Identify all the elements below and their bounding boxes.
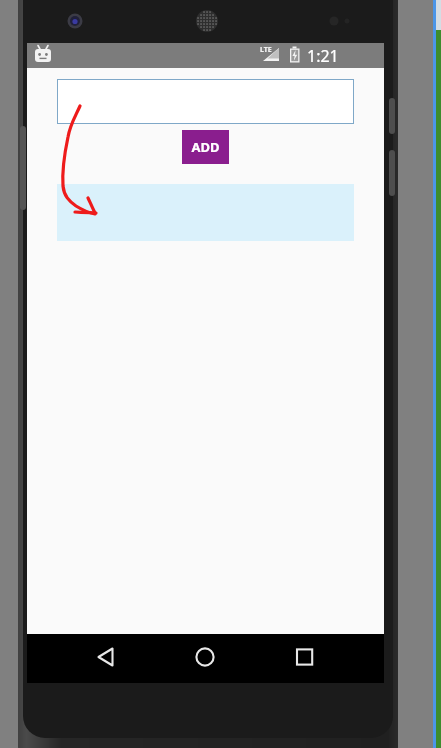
button[interactable]: ADD (182, 130, 229, 164)
staticText: LTE (260, 45, 272, 55)
button[interactable] (57, 79, 354, 124)
button[interactable]: Recent apps (282, 634, 328, 680)
staticText: ADD (191, 138, 220, 156)
button[interactable]: Back (83, 634, 129, 680)
staticText: 1:21 (307, 45, 339, 67)
button[interactable] (57, 184, 354, 241)
button[interactable]: Home (182, 634, 228, 680)
